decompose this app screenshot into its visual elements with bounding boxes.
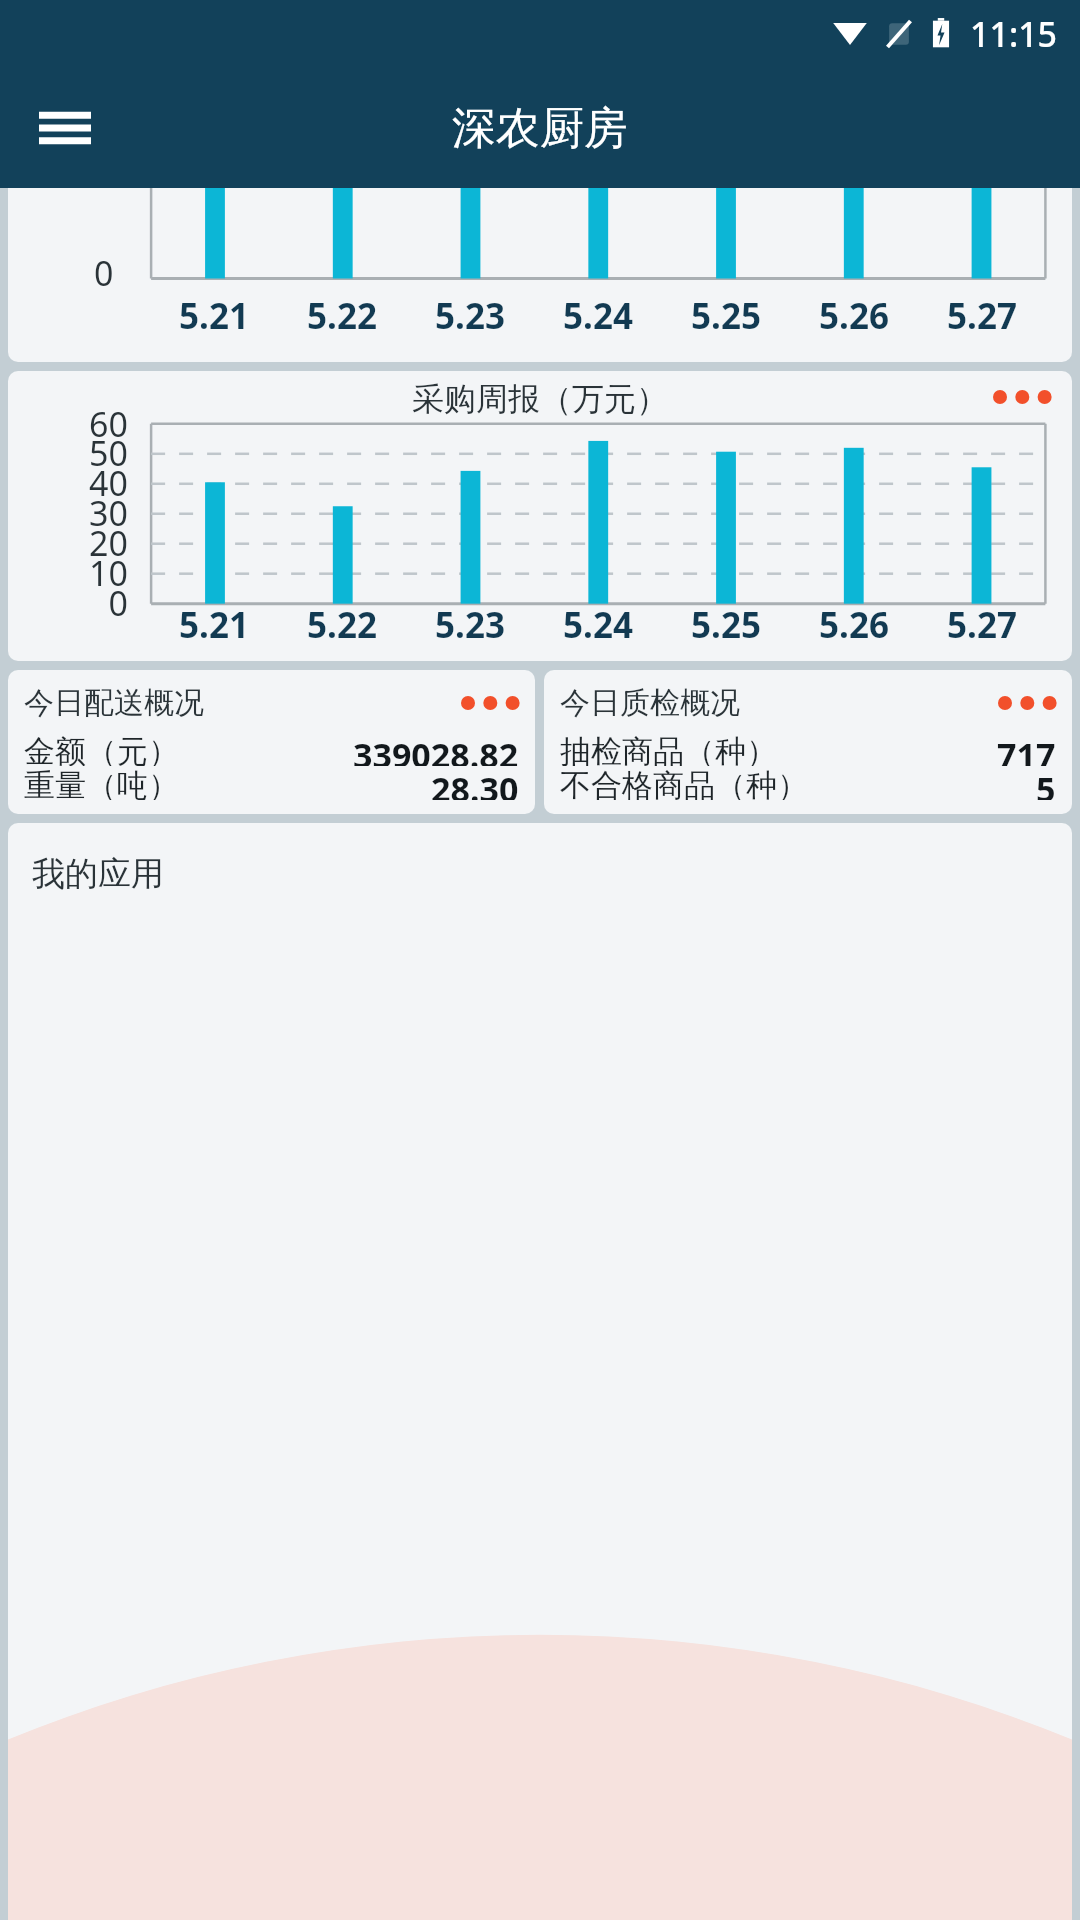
staticText: 5.22 [278,292,406,340]
staticText: 采购周报（万元） [412,379,668,417]
staticText: 5.21 [150,601,278,649]
staticText: 28.30 [431,766,519,800]
staticText: 我的应用 [32,853,164,895]
staticText: 金额（元） [24,732,179,766]
staticText: 5.25 [662,601,790,649]
button[interactable]: 今日配送概况 [8,670,535,814]
staticText: 5.23 [406,601,534,649]
staticText: 5.26 [790,292,918,340]
staticText: 今日配送概况 [24,684,204,722]
staticText: 不合格商品（种） [560,766,808,800]
staticText: 5.27 [918,601,1046,649]
button[interactable]: 0 [8,188,1072,362]
button[interactable]: More options for 今日配送概况 [461,687,519,719]
button[interactable]: 我的应用 [8,823,1072,1920]
staticText: 5.27 [918,292,1046,340]
staticText: 5.21 [150,292,278,340]
staticText: 717 [997,732,1056,766]
staticText: 5.22 [278,601,406,649]
button[interactable]: 今日质检概况 [544,670,1072,814]
button[interactable]: More options for purchase weekly report [990,377,1054,417]
staticText: 深农厨房 [452,101,628,156]
staticText: 5 [1036,766,1056,800]
staticText: 今日质检概况 [560,684,740,722]
staticText: 30 [89,490,128,536]
button[interactable]: 采购周报（万元） [8,371,1072,661]
button[interactable]: Open navigation menu [32,95,98,161]
staticText: 5.26 [790,601,918,649]
staticText: 0 [94,250,114,296]
staticText: 5.25 [662,292,790,340]
staticText: 50 [89,430,128,476]
staticText: 抽检商品（种） [560,732,777,766]
staticText: 0 [108,580,128,626]
staticText: 60 [89,401,128,447]
staticText: 339028.82 [353,732,519,766]
staticText: 40 [89,460,128,506]
staticText: 20 [89,520,128,566]
staticText: 11:15 [970,11,1058,57]
staticText: 5.23 [406,292,534,340]
button[interactable]: More options for 今日质检概况 [998,687,1056,719]
staticText: 5.24 [534,292,662,340]
staticText: 10 [89,550,128,596]
staticText: 重量（吨） [24,766,179,800]
staticText: 5.24 [534,601,662,649]
